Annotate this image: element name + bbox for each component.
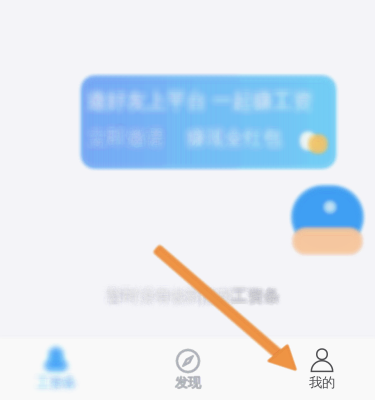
staticText: 工资条 [234,282,282,302]
staticText: 立即邀请 [93,126,169,149]
staticText: 赚现金红包 [180,117,275,140]
staticText: 发现 [176,376,202,392]
staticText: 赚现金红包 [191,120,286,143]
staticText: 发现 [174,376,200,392]
staticText: 赚现金红包 [196,117,291,140]
staticText: 发现 [174,374,200,390]
staticText: 暂时没有收到您的 [111,279,239,299]
staticText: 邀好友上平台 一起赚工资 [91,81,317,105]
staticText: 邀好友上平台 一起赚工资 [92,92,318,116]
button[interactable]: 发现 [132,339,244,391]
staticText: 赚现金红包 [188,120,283,143]
staticText: 赚现金红包 [191,136,286,159]
staticText: 发现 [176,373,202,389]
staticText: 发现 [175,373,201,389]
staticText: 赚现金红包 [185,133,280,156]
staticText: 工资条 [46,369,85,385]
staticText: 立即邀请 [95,130,171,152]
staticText: 立即邀请 [88,126,164,149]
staticText: 发现 [176,374,202,390]
staticText: 邀好友上平台 一起赚工资 [96,83,322,107]
staticText: 发现 [175,374,201,391]
staticText: 赚现金红包 [188,119,283,142]
staticText: 发现 [175,375,201,391]
staticText: 赚现金红包 [179,134,274,157]
staticText: 发现 [176,375,202,392]
staticText: 暂时没有收到您的 [112,284,240,304]
staticText: 暂时没有收到您的 [100,293,228,313]
staticText: 赚现金红包 [191,119,286,142]
staticText: 邀好友上平台 一起赚工资 [82,98,308,122]
button[interactable]: 我的 [266,339,375,391]
staticText: 工资条 [227,288,275,308]
staticText: 赚现金红包 [182,119,277,142]
staticText: 邀好友上平台 一起赚工资 [88,78,314,103]
staticText: 工资条 [29,378,68,395]
staticText: 暂时没有收到您的 [106,280,234,300]
staticText: 赚现金红包 [191,131,286,153]
staticText: 工资条 [32,373,71,390]
staticText: 邀好友上平台 一起赚工资 [79,83,305,107]
staticText: 赚现金红包 [190,128,285,150]
staticText: 邀好友上平台 一起赚工资 [77,96,303,120]
staticText: 暂时没有收到您的 [106,295,234,314]
staticText: 工资条 [31,370,70,387]
staticText: 工资条 [227,286,275,306]
staticText: 暂时没有收到您的 [114,279,242,298]
staticText: 邀好友上平台 一起赚工资 [88,97,314,121]
staticText: 邀好友上平台 一起赚工资 [78,78,304,103]
staticText: 邀好友上平台 一起赚工资 [88,98,314,122]
staticText: 立即邀请 [88,129,164,151]
staticText: 立即邀请 [93,132,169,154]
staticText: 工资条 [35,370,74,387]
staticText: 立即邀请 [81,121,157,144]
button[interactable]: 邀请好友 [83,78,333,166]
staticText: 发现 [176,373,202,390]
staticText: 立即邀请 [93,128,169,150]
staticText: 工资条 [33,371,72,388]
staticText: 邀好友上平台 一起赚工资 [97,92,323,116]
staticText: 工资条 [36,375,75,392]
staticText: 赚现金红包 [185,121,280,144]
staticText: 立即邀请 [86,131,162,153]
staticText: 赚现金红包 [190,134,285,157]
staticText: 工资条 [31,371,70,388]
staticText: 工资条 [227,287,275,307]
staticText: 工资条 [228,285,276,305]
staticText: 赚现金红包 [186,129,281,151]
staticText: 发现 [174,374,200,391]
staticText: 工资条 [234,282,282,302]
staticText: 立即邀请 [78,121,154,144]
button[interactable]: 工资条 [0,339,112,391]
staticText: 赚现金红包 [188,136,283,159]
staticText: 工资条 [235,283,283,303]
staticText: 邀好友上平台 一起赚工资 [77,95,303,119]
staticText: 工资条 [29,367,68,383]
staticText: 工资条 [35,365,74,381]
staticText: 暂时没有收到您的 [107,291,235,311]
staticText: 立即邀请 [94,133,170,156]
staticText: 发现 [175,375,201,392]
staticText: 暂时没有收到您的 [100,289,228,308]
staticText: 工资条 [28,370,67,387]
staticText: 邀好友上平台 一起赚工资 [79,91,305,115]
staticText: 工资条 [234,288,282,308]
staticText: 暂时没有收到您的 [114,295,242,314]
staticText: 立即邀请 [93,123,169,146]
staticText: 工资条 [35,384,74,400]
staticText: 发现 [174,375,200,391]
staticText: 发现 [175,375,201,391]
staticText: 工资条 [234,286,282,305]
staticText: 邀好友上平台 一起赚工资 [93,94,319,118]
staticText: 发现 [175,373,201,390]
staticText: 工资条 [229,290,277,310]
staticText: 工资条 [230,287,278,307]
staticText: 邀好友上平台 一起赚工资 [84,97,310,121]
staticText: 邀好友上平台 一起赚工资 [76,91,302,115]
staticText: 工资条 [45,383,84,399]
staticText: 赚现金红包 [188,121,283,144]
staticText: 工资条 [231,285,279,304]
staticText: 工资条 [30,370,69,387]
staticText: 工资条 [226,291,274,311]
staticText: 暂时没有收到您的 [112,287,240,307]
